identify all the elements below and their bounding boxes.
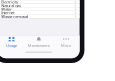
button[interactable]: Natural gas: [0, 4, 80, 7]
staticText: Internet: [1, 10, 14, 15]
staticText: Waste removal: [1, 14, 28, 19]
staticText: Usage: [6, 43, 17, 48]
button[interactable]: Waste removal: [0, 15, 80, 18]
staticText: Electricity: [1, 0, 18, 5]
staticText: Water: [1, 6, 12, 12]
button[interactable]: More: [52, 36, 80, 49]
button[interactable]: Electricity: [0, 0, 80, 3]
staticText: Natural gas: [1, 3, 21, 8]
staticText: Maintenance: [28, 43, 50, 48]
button[interactable]: Usage: [0, 36, 25, 49]
button[interactable]: Maintenance: [25, 36, 52, 49]
button[interactable]: Internet: [0, 11, 80, 14]
button[interactable]: Water: [0, 7, 80, 11]
staticText: More: [61, 43, 71, 48]
